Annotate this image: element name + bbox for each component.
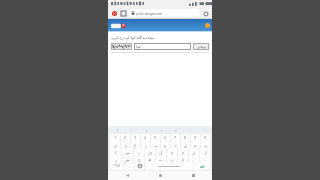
button[interactable]: ؛ — [183, 127, 196, 134]
staticText: : — [203, 129, 204, 133]
button[interactable]: بھیجیں — [193, 43, 209, 50]
staticText: ، — [129, 164, 131, 168]
staticText: ع — [134, 143, 137, 147]
button[interactable]: 9 — [191, 134, 200, 141]
button[interactable]: 7 — [171, 134, 180, 141]
button[interactable]: ف — [145, 148, 155, 155]
staticText: ہ — [194, 143, 197, 147]
button[interactable]: 4 — [141, 134, 150, 141]
staticText: ت — [154, 143, 158, 147]
button[interactable]: ، — [189, 155, 199, 162]
button[interactable]: 3 — [131, 134, 140, 141]
staticText: 0 — [204, 135, 207, 140]
button[interactable]: ح — [167, 148, 177, 155]
staticText: ÷ — [161, 129, 163, 133]
button[interactable]: ش — [122, 155, 133, 162]
staticText: 1 — [114, 135, 117, 140]
button[interactable]: ۔ — [200, 155, 210, 162]
staticText: urdu-rozgar.com — [136, 11, 163, 16]
button[interactable]: ؟ — [140, 127, 154, 134]
staticText: ن — [171, 157, 174, 161]
button[interactable]: Site logo — [111, 22, 127, 30]
button[interactable]: ی — [181, 141, 190, 148]
button[interactable]: ط — [145, 155, 155, 162]
button[interactable]: 5 — [151, 134, 160, 141]
button[interactable]: urdu-rozgar.com — [129, 9, 200, 17]
button[interactable]: Stop loading — [111, 10, 118, 17]
button[interactable]: س — [122, 148, 133, 155]
staticText: ش — [125, 157, 130, 161]
staticText: ؟ — [146, 129, 148, 133]
staticText: 4 — [144, 135, 147, 140]
staticText: نیچے دیے گئے کوڈ کو درج کریں — [111, 35, 155, 40]
button[interactable]: ن — [167, 155, 177, 162]
staticText: 3 — [134, 135, 137, 140]
button[interactable]: 6 — [161, 134, 170, 141]
button[interactable]: ل — [200, 148, 210, 155]
button[interactable]: ء — [171, 141, 180, 148]
staticText: 7 — [174, 135, 177, 140]
button[interactable]: ر — [141, 141, 150, 148]
button[interactable]: Switch tabs — [120, 10, 127, 17]
staticText: 9 — [194, 135, 197, 140]
button[interactable]: ÷ — [155, 127, 168, 134]
button[interactable]: ہ — [191, 141, 200, 148]
button[interactable]: ~ — [125, 127, 139, 134]
button[interactable]: Captcha image — [111, 43, 132, 50]
button[interactable]: ج — [178, 148, 188, 155]
button[interactable]: ?123 — [110, 162, 124, 170]
staticText: 5 — [154, 135, 157, 140]
button[interactable]: 1 — [110, 134, 120, 141]
button[interactable]: 0 — [201, 134, 210, 141]
button[interactable]: کوڈ — [134, 43, 191, 50]
button[interactable]: ا — [110, 148, 121, 155]
button[interactable]: Back — [122, 171, 132, 180]
button[interactable]: × — [169, 127, 182, 134]
button[interactable]: ز — [110, 155, 121, 162]
staticText: × — [175, 129, 177, 133]
button[interactable]: پ — [201, 141, 210, 148]
staticText: ے — [164, 143, 167, 147]
button[interactable]: Change keyboard language — [135, 162, 144, 170]
staticText: 2 — [124, 135, 127, 140]
staticText: ؛ — [189, 129, 191, 133]
button[interactable]: ع — [131, 141, 140, 148]
staticText: ز — [115, 157, 117, 161]
button[interactable]: 2 — [121, 134, 130, 141]
staticText: د — [138, 150, 140, 154]
button[interactable]: Home — [155, 171, 165, 180]
button[interactable]: م — [178, 155, 188, 162]
staticText: کوڈ — [136, 45, 141, 49]
staticText: پ — [204, 143, 208, 147]
staticText: ط — [148, 157, 152, 161]
button[interactable]: گ — [156, 148, 166, 155]
button[interactable]: ق — [110, 141, 120, 148]
button[interactable]: ، — [125, 162, 134, 170]
button[interactable]: چ — [134, 155, 144, 162]
button[interactable]: Enter — [194, 162, 210, 170]
staticText: ا — [115, 150, 117, 154]
staticText: بھیجیں — [197, 45, 206, 49]
button[interactable]: ب — [156, 155, 166, 162]
button[interactable]: Bookmark — [202, 10, 209, 17]
button[interactable]: ! — [110, 127, 124, 134]
button[interactable]: ک — [189, 148, 199, 155]
staticText: ف — [148, 150, 152, 154]
staticText: ب — [159, 157, 163, 161]
staticText: ، — [193, 157, 195, 161]
staticText: ?123 — [114, 164, 121, 168]
button[interactable]: Recent apps — [188, 171, 198, 180]
button[interactable]: و — [121, 141, 130, 148]
button[interactable]: Space — [145, 162, 193, 170]
staticText: ر — [145, 143, 147, 147]
staticText: س — [125, 150, 130, 154]
staticText: ء — [175, 143, 177, 147]
staticText: ج — [182, 150, 185, 154]
button[interactable]: د — [134, 148, 144, 155]
staticText: ی — [184, 143, 187, 147]
button[interactable]: 8 — [181, 134, 190, 141]
button[interactable]: ے — [161, 141, 170, 148]
staticText: 6 — [164, 135, 167, 140]
button[interactable]: ت — [151, 141, 160, 148]
